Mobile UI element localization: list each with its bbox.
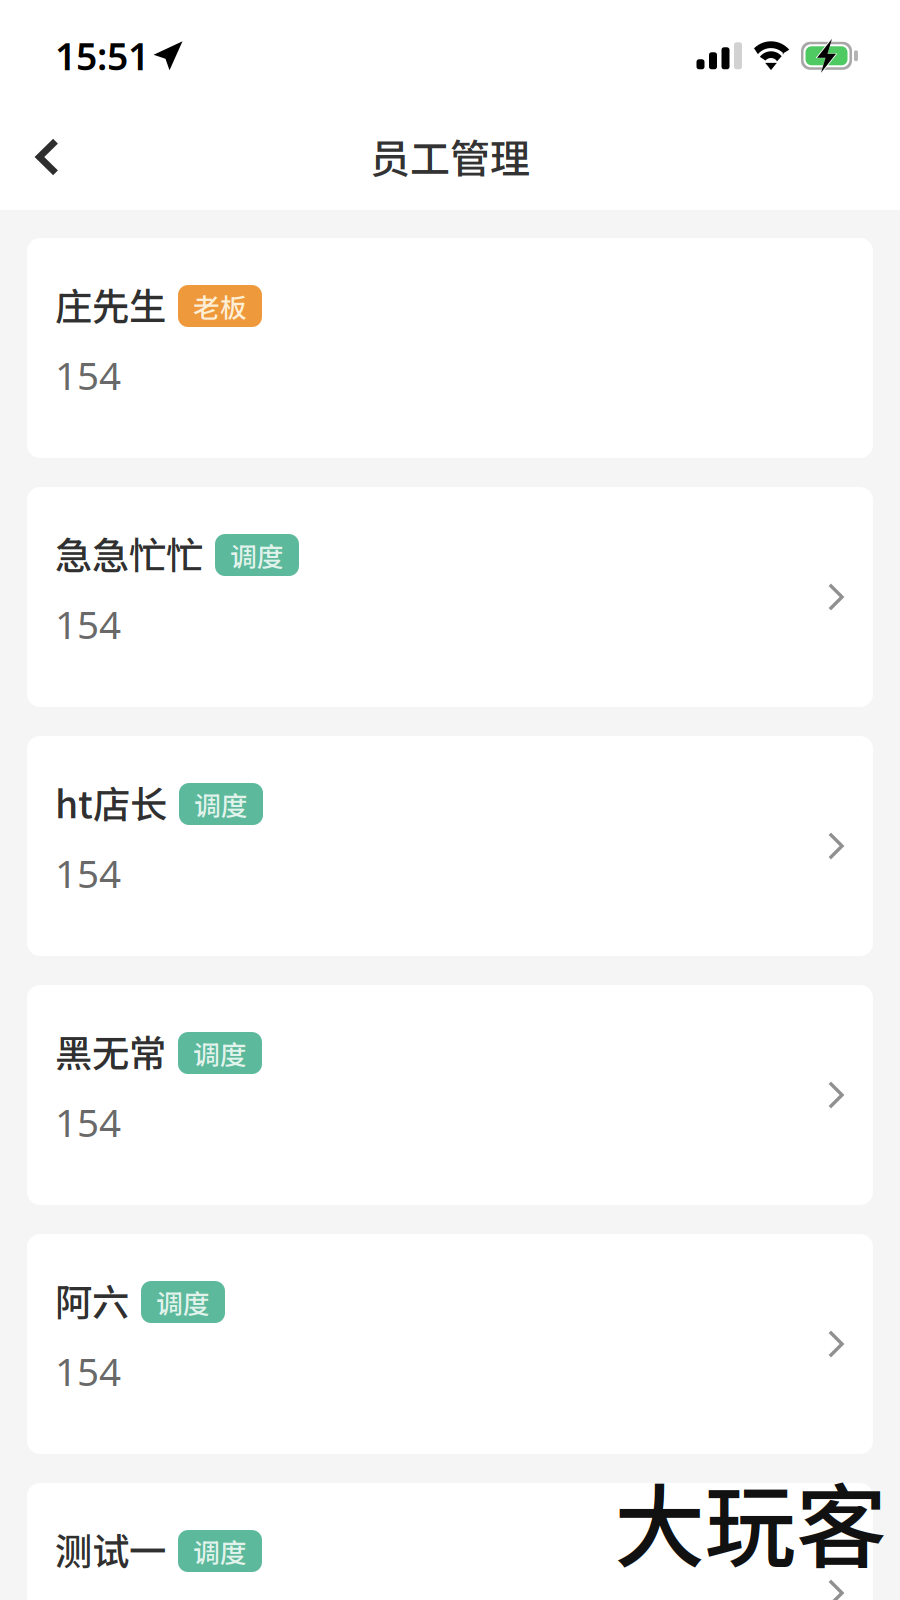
button[interactable]: Back xyxy=(0,116,83,194)
button[interactable]: 黑无常 xyxy=(27,985,873,1205)
staticText: 大玩客 xyxy=(614,1455,887,1586)
button[interactable]: 急急忙忙 xyxy=(27,487,873,707)
staticText: 阿六 xyxy=(55,1273,129,1327)
button[interactable]: 阿六 xyxy=(27,1234,873,1454)
staticText: 调度 xyxy=(230,536,284,574)
staticText: 调度 xyxy=(156,1283,210,1321)
staticText: 154 xyxy=(55,847,121,899)
staticText: 154 xyxy=(55,598,121,650)
staticText: 154 xyxy=(55,349,121,401)
staticText: 员工管理 xyxy=(370,127,530,185)
staticText: 调度 xyxy=(193,1034,247,1072)
button[interactable]: 庄先生 xyxy=(27,238,873,458)
staticText: 老板 xyxy=(193,287,247,325)
staticText: 测试一 xyxy=(55,1522,166,1576)
staticText: 庄先生 xyxy=(55,277,166,331)
staticText: 调度 xyxy=(194,785,248,823)
staticText: 154 xyxy=(55,1345,121,1397)
button[interactable]: 测试一 xyxy=(27,1483,873,1600)
staticText: 154 xyxy=(55,1096,121,1148)
staticText: 黑无常 xyxy=(55,1024,166,1078)
staticText: 急急忙忙 xyxy=(55,526,203,580)
staticText: 15:51 xyxy=(55,31,149,81)
button[interactable]: ht店长 xyxy=(27,736,873,956)
staticText: 调度 xyxy=(193,1532,247,1570)
staticText: ht店长 xyxy=(55,775,167,829)
